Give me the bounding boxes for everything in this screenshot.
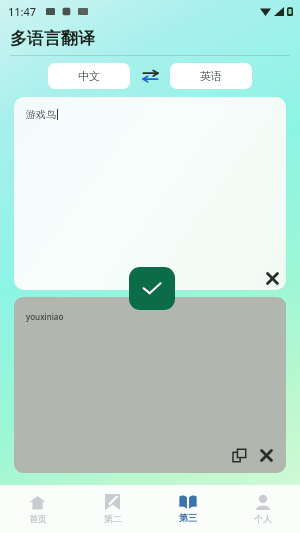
button[interactable]: 首页	[0, 485, 75, 533]
button[interactable]: 英语	[170, 63, 252, 89]
button[interactable]: 中文	[48, 63, 130, 89]
staticText: 个人	[254, 513, 272, 524]
staticText: 11:47	[8, 4, 37, 19]
staticText: 第三	[179, 512, 197, 523]
button[interactable]: Close	[262, 268, 283, 289]
button[interactable]: 第二	[75, 485, 150, 533]
button[interactable]: 个人	[225, 485, 300, 533]
button[interactable]: 第三	[150, 485, 225, 533]
staticText: 首页	[29, 513, 47, 524]
staticText: 中文	[78, 69, 100, 83]
staticText: 游戏鸟	[26, 108, 56, 121]
staticText: youxiniao	[26, 311, 64, 322]
button[interactable]: Swap languages	[130, 62, 170, 90]
button[interactable]: Copy translation	[230, 446, 248, 464]
button[interactable]: youxiniao	[14, 297, 286, 473]
staticText: 英语	[200, 69, 222, 83]
staticText: 第二	[104, 513, 122, 524]
button[interactable]: Confirm translate	[129, 267, 175, 310]
button[interactable]: Clear translation	[256, 445, 276, 465]
button[interactable]: 游戏鸟	[14, 97, 286, 290]
staticText: 多语言翻译	[10, 28, 95, 49]
